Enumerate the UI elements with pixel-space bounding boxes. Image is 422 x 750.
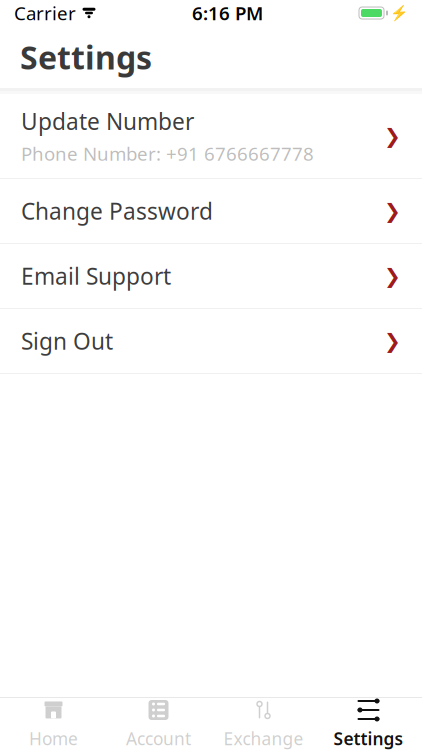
staticText: Settings (20, 36, 152, 78)
button[interactable]: Update Number (0, 94, 422, 178)
staticText: Settings (333, 727, 403, 750)
staticText: 6:16 PM (192, 1, 263, 25)
button[interactable]: Email Support (0, 244, 422, 308)
staticText: Change Password (21, 196, 213, 226)
staticText: Home (29, 727, 78, 750)
staticText: ⚡ (390, 5, 408, 21)
staticText: ❯ (384, 330, 401, 352)
staticText: Carrier (14, 1, 76, 25)
staticText: Account (126, 727, 191, 750)
button[interactable]: Sign Out (0, 309, 422, 373)
staticText: Sign Out (21, 326, 113, 356)
button[interactable]: Exchange (211, 698, 316, 750)
staticText: Phone Number: +91 6766667778 (21, 141, 314, 166)
button[interactable]: Change Password (0, 179, 422, 243)
staticText: ❯ (384, 200, 401, 222)
staticText: ❯ (384, 265, 401, 287)
staticText: Email Support (21, 261, 171, 291)
button[interactable]: Home (1, 698, 106, 750)
button[interactable]: Settings (316, 698, 421, 750)
staticText: Exchange (223, 727, 303, 750)
staticText: Update Number (21, 106, 194, 136)
staticText: ❯ (384, 125, 401, 147)
button[interactable]: Account (106, 698, 211, 750)
